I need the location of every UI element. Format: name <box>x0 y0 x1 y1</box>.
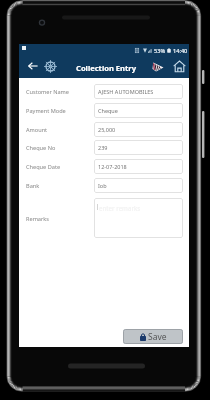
staticText: 53% <box>154 47 166 55</box>
button[interactable]: enter remarks <box>94 198 183 238</box>
button[interactable]: Iob <box>94 178 183 193</box>
staticText: Cheque <box>98 107 118 114</box>
button[interactable]: 25,000 <box>94 122 183 137</box>
staticText: Payment Mode <box>26 107 66 115</box>
staticText: Cheque No <box>26 144 56 152</box>
staticText: 12-07-2018 <box>98 163 127 170</box>
staticText: 25,000 <box>98 126 116 133</box>
staticText: Collection Entry <box>76 63 137 73</box>
staticText: Iob <box>98 182 107 189</box>
staticText: Cheque Date <box>26 163 61 171</box>
staticText: Amount <box>26 126 48 134</box>
button[interactable]: Home <box>172 59 186 73</box>
button[interactable]: 239 <box>94 140 183 155</box>
button[interactable]: Back <box>26 59 40 73</box>
button[interactable]: Signature <box>151 59 165 73</box>
staticText: 239 <box>98 144 108 151</box>
staticText: Save <box>148 331 167 343</box>
staticText: enter remarks <box>99 204 141 212</box>
staticText: Customer Name <box>26 88 69 96</box>
button[interactable]: 12-07-2018 <box>94 159 183 174</box>
button[interactable]: AJESH AUTOMOBILES <box>94 84 183 99</box>
staticText: Remarks <box>26 215 49 223</box>
button[interactable]: Menu <box>43 59 57 73</box>
button[interactable]: Save <box>123 329 183 344</box>
button[interactable]: Cheque <box>94 103 183 118</box>
staticText: Bank <box>26 182 40 190</box>
staticText: 14:40 <box>173 47 188 55</box>
staticText: AJESH AUTOMOBILES <box>98 88 154 95</box>
